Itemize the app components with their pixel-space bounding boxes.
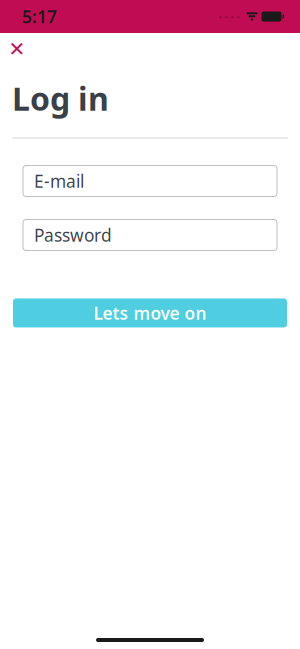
button[interactable]: Password [23,219,277,250]
button[interactable]: Lets move on [13,298,287,327]
button[interactable]: Close [0,33,34,65]
staticText: Log in [12,77,109,119]
staticText [258,8,261,24]
staticText: ✕ [8,38,25,60]
staticText: Lets move on [93,301,206,324]
staticText: Password [34,223,112,246]
staticText: 5:17 [22,5,57,28]
button[interactable]: E-mail [23,165,277,196]
staticText: E-mail [34,169,84,192]
staticText: · · · · [218,8,239,24]
